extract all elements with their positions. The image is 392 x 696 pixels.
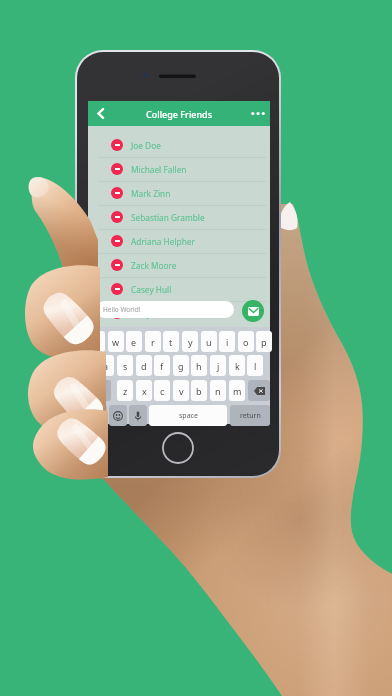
button[interactable]: w (108, 331, 124, 352)
staticText: x (142, 385, 147, 397)
staticText: s (123, 360, 128, 372)
staticText: u (206, 336, 212, 348)
button[interactable]: Sebastian Gramble (88, 205, 270, 229)
staticText: p (261, 336, 267, 348)
button[interactable]: k (229, 355, 245, 376)
button[interactable]: q (89, 331, 105, 352)
staticText: Mary Gosh (131, 308, 174, 319)
button[interactable]: r (145, 331, 161, 352)
button[interactable]: i (219, 331, 235, 352)
staticText: t (169, 336, 173, 348)
staticText: m (233, 385, 242, 397)
staticText: return (240, 411, 261, 421)
staticText: f (160, 360, 164, 372)
button[interactable]: Dictate (129, 405, 147, 426)
button[interactable]: Backspace (248, 380, 270, 401)
button[interactable]: 123 (89, 405, 107, 426)
staticText: z (123, 385, 128, 397)
staticText: Adriana Helpher (131, 236, 195, 247)
button[interactable]: Casey Hull (88, 277, 270, 301)
staticText: h (196, 360, 202, 372)
button[interactable]: h (191, 355, 207, 376)
button[interactable]: j (210, 355, 226, 376)
staticText: w (112, 336, 120, 348)
button[interactable]: Mary Gosh (88, 301, 270, 325)
staticText: a (103, 360, 109, 372)
button[interactable]: u (201, 331, 217, 352)
button[interactable]: e (126, 331, 142, 352)
button[interactable]: Shift (89, 380, 111, 401)
button[interactable]: Mark Zinn (88, 181, 270, 205)
staticText: n (215, 385, 221, 397)
staticText: Zack Moore (131, 260, 177, 271)
button[interactable]: Back (88, 101, 112, 126)
staticText: g (178, 360, 184, 372)
button[interactable]: Send message (242, 300, 264, 322)
button[interactable]: Emoji (109, 405, 127, 426)
button[interactable]: space (149, 405, 227, 426)
staticText: i (226, 336, 229, 348)
button[interactable]: x (136, 380, 152, 401)
staticText: b (196, 385, 202, 397)
staticText: d (141, 360, 147, 372)
button[interactable]: a (98, 355, 114, 376)
button[interactable]: Michael Fallen (88, 157, 270, 181)
button[interactable]: Zack Moore (88, 253, 270, 277)
staticText: College Friends (146, 108, 213, 120)
button[interactable]: g (173, 355, 189, 376)
button[interactable]: t (163, 331, 179, 352)
staticText: Joe Doe (131, 140, 161, 151)
staticText: l (254, 360, 257, 372)
button[interactable]: m (229, 380, 245, 401)
staticText: Michael Fallen (131, 164, 187, 175)
button[interactable]: z (117, 380, 133, 401)
staticText: Mark Zinn (131, 188, 171, 199)
button[interactable]: d (136, 355, 152, 376)
button[interactable]: More options (244, 101, 270, 126)
staticText: Casey Hull (131, 284, 172, 295)
button[interactable]: n (210, 380, 226, 401)
staticText: 123 (92, 411, 105, 421)
staticText: j (217, 360, 220, 372)
staticText: e (131, 336, 137, 348)
staticText: space (179, 411, 198, 421)
staticText: k (235, 360, 240, 372)
button[interactable]: l (247, 355, 263, 376)
button[interactable]: y (182, 331, 198, 352)
staticText: o (243, 336, 249, 348)
button[interactable]: p (256, 331, 272, 352)
staticText: v (179, 385, 184, 397)
staticText: y (188, 336, 193, 348)
staticText: r (151, 336, 155, 348)
button[interactable]: Hello World! (96, 301, 234, 318)
button[interactable]: s (117, 355, 133, 376)
button[interactable]: c (154, 380, 170, 401)
staticText: Sebastian Gramble (131, 212, 205, 223)
button[interactable]: v (173, 380, 189, 401)
button[interactable]: Adriana Helpher (88, 229, 270, 253)
button[interactable]: return (230, 405, 270, 426)
button[interactable]: b (191, 380, 207, 401)
staticText: Hello World! (103, 305, 141, 314)
button[interactable]: f (154, 355, 170, 376)
button[interactable]: Joe Doe (88, 133, 270, 157)
staticText: c (160, 385, 165, 397)
button[interactable]: o (238, 331, 254, 352)
